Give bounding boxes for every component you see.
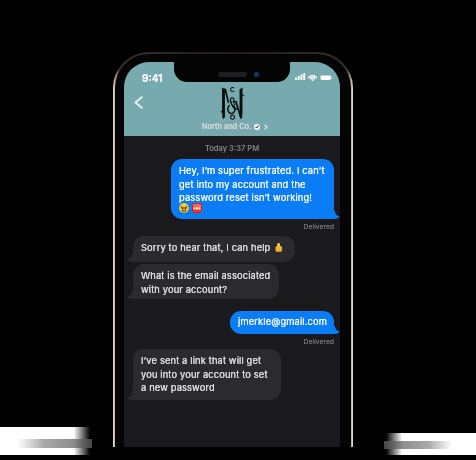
staticText: Delivered: [124, 337, 334, 345]
staticText: jmerkle@gmail.com: [238, 316, 328, 327]
staticText: What is the email associated with your a…: [141, 270, 273, 295]
staticText: Today 3:37 PM: [124, 144, 340, 153]
button[interactable]: jmerkle@gmail.com: [230, 311, 334, 334]
staticText: North and Co.: [202, 122, 252, 131]
staticText: Sorry to hear that, I can help: [141, 242, 274, 253]
button[interactable]: Sorry to hear that, I can help: [133, 236, 295, 262]
staticText: 9:41: [142, 72, 163, 84]
staticText: I’ve sent a link that will get you into …: [141, 355, 269, 393]
button[interactable]: What is the email associated with your a…: [133, 264, 279, 299]
button[interactable]: North and Co.: [127, 122, 340, 131]
button[interactable]: Back: [124, 90, 148, 114]
staticText: Delivered: [124, 222, 334, 230]
button[interactable]: Hey, I’m super frustrated. I can’t get i…: [171, 159, 334, 219]
staticText: Hey, I’m super frustrated. I can’t get i…: [179, 165, 325, 203]
button[interactable]: I’ve sent a link that will get you into …: [133, 349, 281, 400]
